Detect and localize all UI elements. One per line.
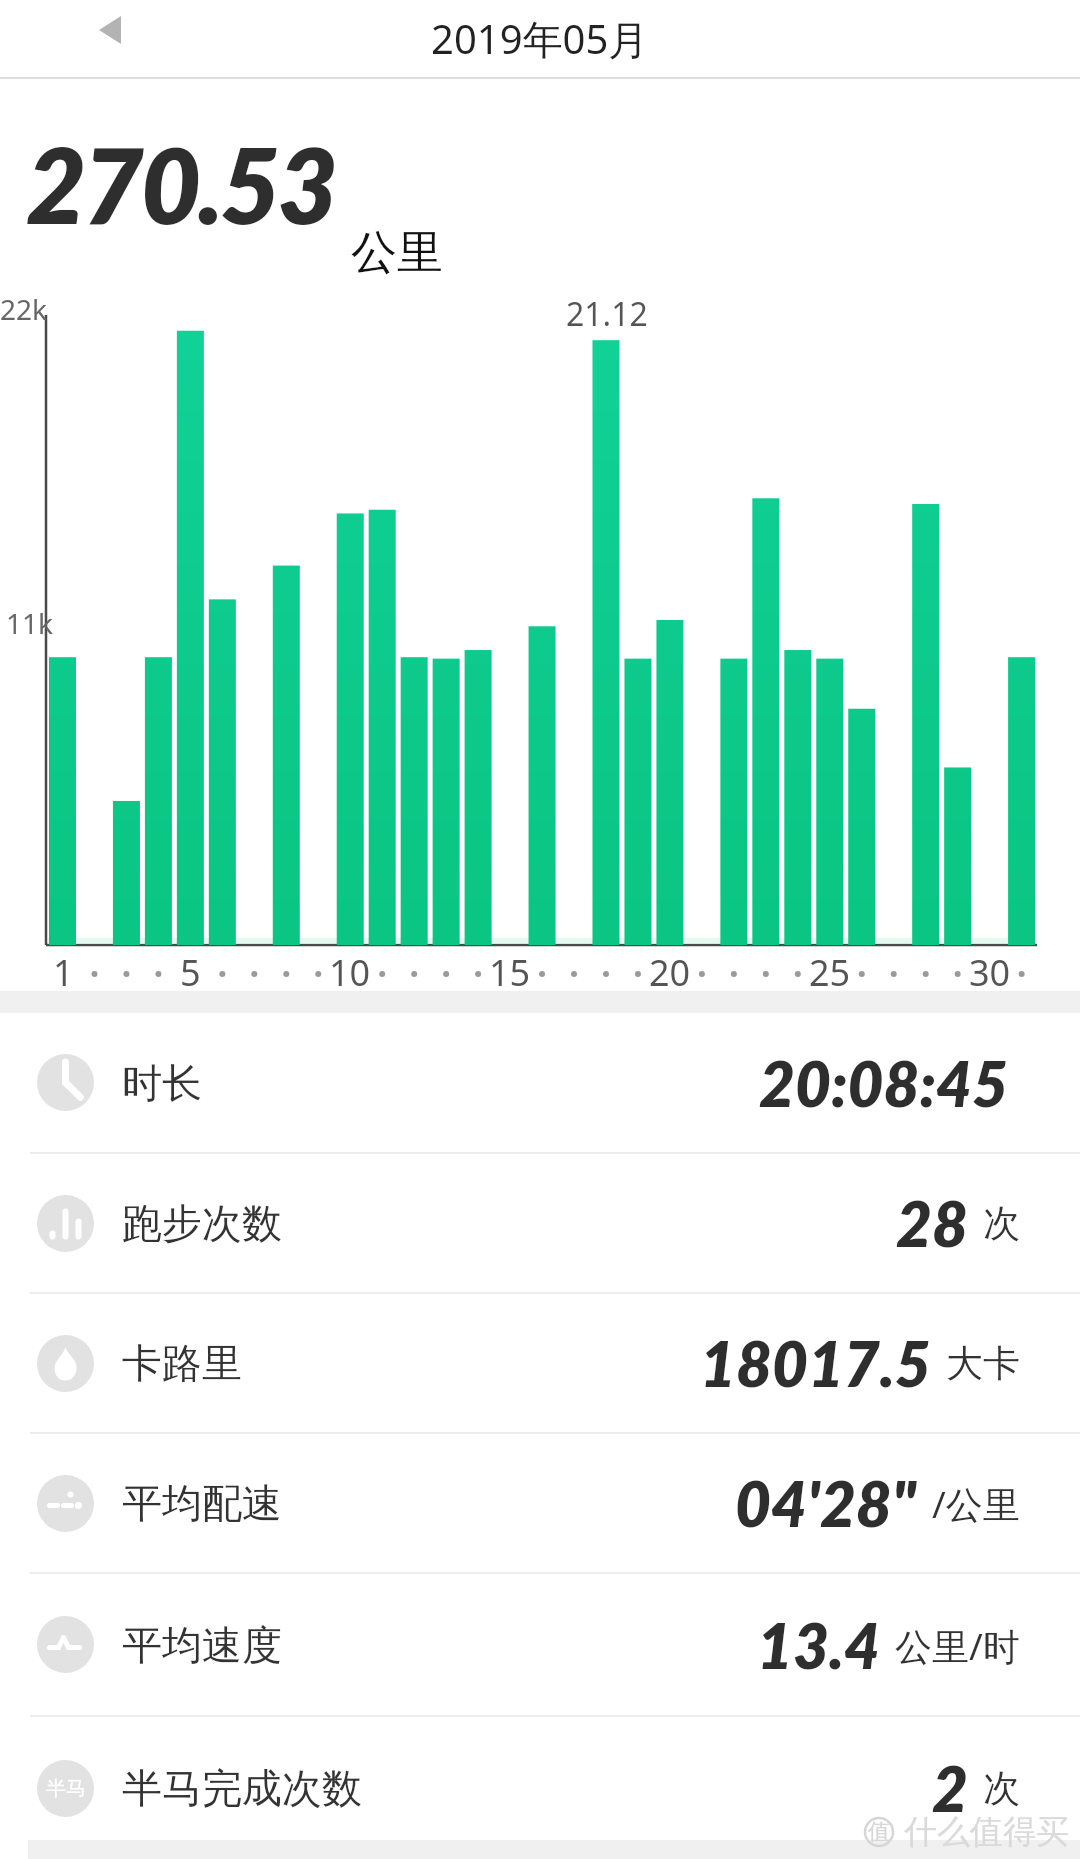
staticText: 什么值得买 (904, 1811, 1069, 1853)
staticText: 15 (489, 948, 531, 997)
staticText: 04'28" (735, 1466, 917, 1540)
staticText: 11k (6, 604, 53, 642)
staticText: 13.4 (757, 1608, 880, 1682)
staticText: 半马完成次数 (122, 1763, 362, 1813)
button[interactable]: 半马 (0, 1717, 1080, 1859)
staticText: 20 (649, 948, 691, 997)
staticText: 22k (0, 290, 47, 328)
button[interactable] (80, 0, 140, 60)
staticText: 30 (969, 948, 1011, 997)
staticText: 跑步次数 (122, 1198, 282, 1248)
staticText: 28 (896, 1186, 968, 1260)
staticText: 次 (983, 1200, 1020, 1247)
staticText: 值 (868, 1818, 890, 1846)
staticText: 5 (180, 948, 201, 997)
staticText: 25 (809, 948, 851, 997)
staticText: 公里/时 (895, 1620, 1020, 1671)
staticText: 270.53 (26, 121, 335, 246)
staticText: 10 (329, 948, 371, 997)
button[interactable]: 平均速度 (0, 1574, 1080, 1715)
staticText: 次 (983, 1765, 1020, 1812)
button[interactable]: 卡路里 (0, 1294, 1080, 1432)
button[interactable]: 跑步次数 (0, 1154, 1080, 1292)
staticText: 时长 (122, 1058, 202, 1108)
staticText: 平均配速 (122, 1478, 282, 1528)
staticText: /公里 (932, 1478, 1020, 1529)
button[interactable]: 平均配速 (0, 1434, 1080, 1572)
staticText: 2019年05月 (431, 11, 649, 66)
staticText: 18017.5 (700, 1326, 931, 1400)
staticText: 1 (53, 948, 74, 997)
staticText: 半马 (46, 1776, 86, 1801)
staticText: 大卡 (946, 1340, 1020, 1387)
button[interactable]: 时长 (0, 1013, 1080, 1152)
staticText: 平均速度 (122, 1620, 282, 1670)
staticText: 2 (932, 1751, 968, 1825)
staticText: 公里 (351, 224, 443, 282)
staticText: 21.12 (566, 292, 648, 336)
staticText: 卡路里 (122, 1338, 242, 1388)
staticText: 20:08:45 (759, 1046, 1008, 1120)
